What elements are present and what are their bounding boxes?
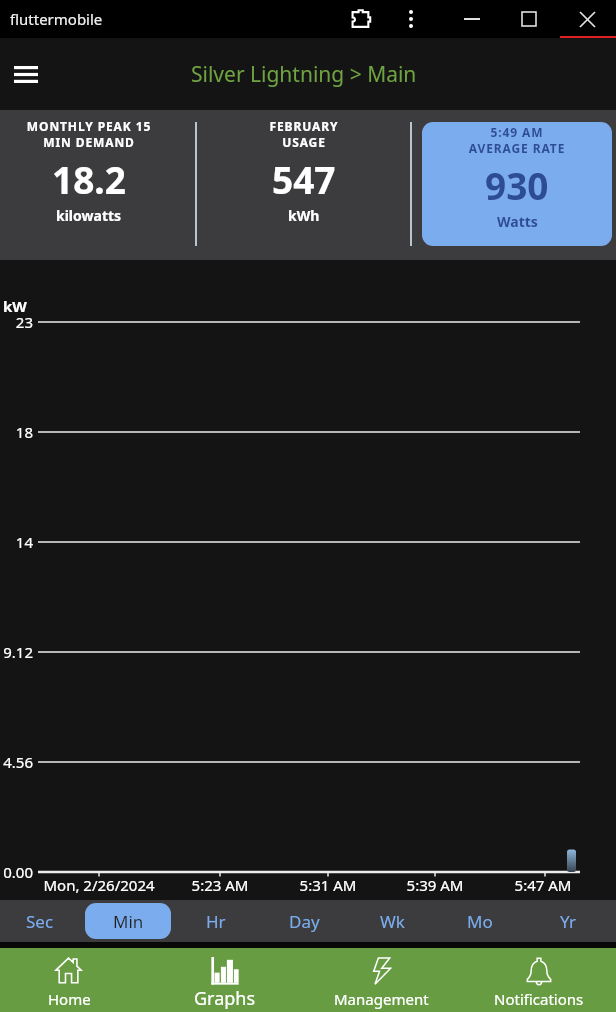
staticText: 0.00 [0,862,33,882]
button[interactable]: Close [558,0,616,38]
staticText: Mon, 2/26/2024 [19,875,179,895]
staticText: Wk [380,910,405,933]
button[interactable]: Management [303,948,460,1012]
staticText: Mo [467,910,493,933]
button[interactable]: Mo [437,903,523,939]
staticText: 930 [485,160,549,210]
button[interactable]: Minimize [443,0,501,38]
button[interactable]: Home [0,948,147,1012]
staticText: 9.12 [0,642,33,662]
staticText: Management [334,989,429,1009]
staticText: Yr [560,910,577,933]
button[interactable]: 5:49 AM AVERAGE RATE [422,122,612,240]
staticText: Watts [497,212,538,231]
staticText: MONTHLY PEAK 15 MIN DEMAND [0,118,178,150]
staticText: 4.56 [0,752,33,772]
button[interactable]: Graphs [147,948,303,1012]
staticText: kWh [288,206,320,225]
staticText: kilowatts [56,206,122,225]
button[interactable]: Extensions [341,0,381,38]
staticText: fluttermobile [10,9,103,29]
button[interactable]: Sec [0,903,83,939]
staticText: 18 [0,422,33,442]
staticText: 5:23 AM [140,875,300,895]
staticText: Silver Lightning > Main [191,60,417,89]
button[interactable]: Wk [349,903,435,939]
button[interactable]: MONTHLY PEAK 15 MIN DEMAND [0,110,178,260]
staticText: 547 [272,154,336,204]
button[interactable]: Yr [525,903,611,939]
staticText: Min [113,910,144,933]
staticText: Sec [26,910,54,933]
staticText: 5:49 AM AVERAGE RATE [422,124,612,156]
staticText: Notifications [494,989,584,1009]
staticText: Hr [206,910,226,933]
staticText: 5:31 AM [248,875,408,895]
button[interactable]: FEBRUARY USAGE [215,110,393,260]
staticText: 5:39 AM [355,875,515,895]
button[interactable]: Maximize [500,0,558,38]
staticText: Graphs [194,986,256,1011]
button[interactable]: 5:49 AM AVERAGE RATE [422,122,612,246]
button[interactable]: Day [261,903,347,939]
button[interactable]: Hr [173,903,259,939]
staticText: 14 [0,532,33,552]
button[interactable]: Menu [0,48,52,100]
staticText: Day [289,910,320,933]
staticText: 5:47 AM [463,875,616,895]
staticText: Home [48,989,91,1009]
staticText: FEBRUARY USAGE [215,118,393,150]
button[interactable]: More options [391,0,431,38]
staticText: kW [3,296,27,316]
button[interactable]: Notifications [460,948,616,1012]
staticText: 23 [0,312,33,332]
button[interactable]: Min [85,903,171,939]
staticText: 18.2 [52,154,126,204]
